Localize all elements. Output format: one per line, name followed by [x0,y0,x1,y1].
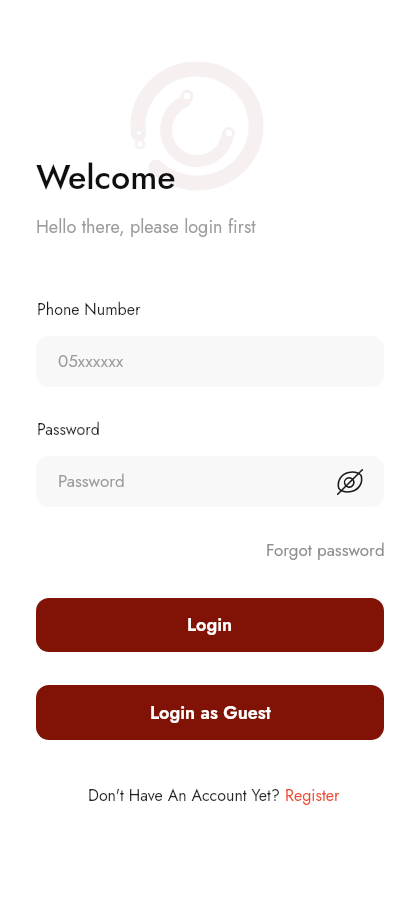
staticText: Hello there, please login first [36,214,256,240]
staticText: Password [58,469,125,494]
staticText: Login [187,612,233,638]
button[interactable]: Forgot password [266,538,385,563]
button[interactable]: Show password [333,465,367,499]
staticText: Welcome [36,153,176,202]
staticText: 05xxxxxx [58,349,124,374]
button[interactable]: Login as Guest [36,685,384,740]
button[interactable]: Register [285,784,340,807]
button[interactable]: 05xxxxxx [36,336,384,387]
staticText: Password [37,418,100,441]
staticText: Don't Have An Account Yet? [88,784,285,807]
staticText: Login as Guest [150,700,271,726]
staticText: Phone Number [37,298,141,321]
button[interactable]: Password [36,456,384,507]
button[interactable]: Login [36,598,384,652]
